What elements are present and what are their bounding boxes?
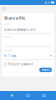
button[interactable]: Account bbox=[2, 6, 6, 11]
button[interactable]: Home bbox=[23, 91, 32, 100]
button[interactable]: SHARE bbox=[39, 68, 52, 72]
staticText: In 7 days bbox=[4, 54, 16, 58]
staticText: SHARE bbox=[42, 68, 50, 72]
button[interactable]: Recent apps bbox=[40, 91, 49, 100]
staticText: MESSAGE bbox=[4, 36, 11, 38]
button[interactable]: Back bbox=[7, 91, 16, 100]
staticText: LINK EXPIRES bbox=[4, 49, 13, 51]
staticText: Require password bbox=[8, 62, 33, 66]
button[interactable]: Require password bbox=[4, 60, 52, 66]
staticText: someone@example.com bbox=[4, 28, 35, 31]
staticText: Share a file bbox=[4, 15, 25, 20]
